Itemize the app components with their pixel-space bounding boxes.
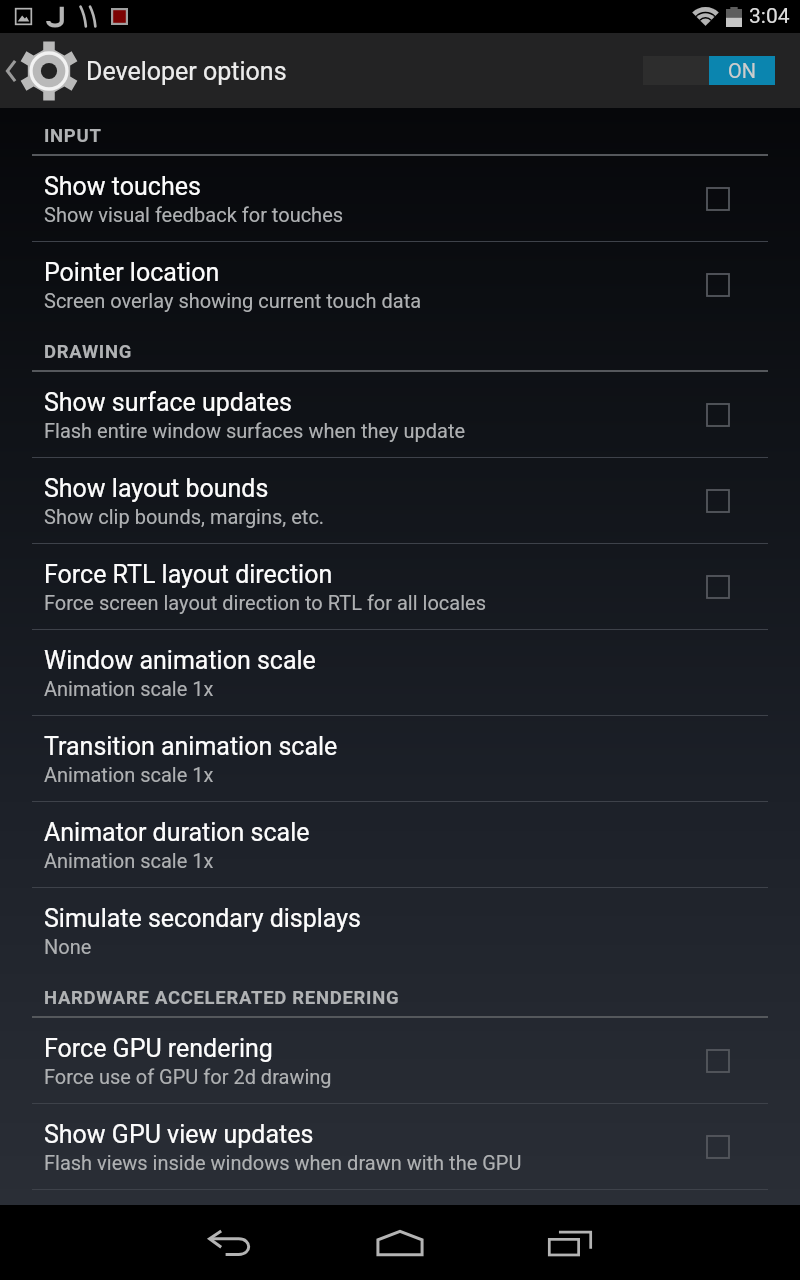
staticText: Screen overlay showing current touch dat…	[44, 289, 422, 312]
staticText: Show surface updates	[44, 388, 292, 417]
button[interactable]: Force RTL layout direction	[0, 544, 800, 630]
staticText: Flash views inside windows when drawn wi…	[44, 1151, 522, 1174]
staticText: Animation scale 1x	[44, 763, 214, 786]
button[interactable]: Transition animation scale	[0, 716, 800, 802]
staticText: Window animation scale	[44, 646, 316, 675]
staticText: Show visual feedback for touches	[44, 203, 344, 226]
staticText: Pointer location	[44, 258, 220, 287]
staticText: INPUT	[44, 125, 102, 147]
button[interactable]: Animator duration scale	[0, 802, 800, 888]
button[interactable]: Developer options on	[643, 56, 775, 85]
button[interactable]: Show GPU view updates	[0, 1104, 800, 1190]
staticText: HARDWARE ACCELERATED RENDERING	[44, 987, 400, 1009]
staticText: 3:04	[749, 4, 790, 29]
button[interactable]: Force GPU rendering	[0, 1018, 800, 1104]
staticText: None	[44, 935, 92, 958]
button[interactable]: Show surface updates	[0, 372, 800, 458]
button[interactable]: Window animation scale	[0, 630, 800, 716]
staticText: Flash entire window surfaces when they u…	[44, 419, 466, 442]
staticText: Simulate secondary displays	[44, 904, 362, 933]
staticText: ON	[728, 59, 757, 82]
button[interactable]: Developer options	[0, 41, 287, 101]
staticText: Animation scale 1x	[44, 677, 214, 700]
button[interactable]: Simulate secondary displays	[0, 888, 800, 974]
staticText: Show layout bounds	[44, 474, 269, 503]
staticText: Show GPU view updates	[44, 1120, 314, 1149]
button[interactable]: Home	[360, 1205, 440, 1280]
staticText: Force GPU rendering	[44, 1034, 273, 1063]
staticText: DRAWING	[44, 341, 133, 363]
staticText: Developer options	[86, 57, 287, 86]
staticText: Force screen layout direction to RTL for…	[44, 591, 486, 614]
staticText: Show touches	[44, 172, 201, 201]
staticText: Force use of GPU for 2d drawing	[44, 1065, 332, 1088]
button[interactable]: Pointer location	[0, 242, 800, 328]
button[interactable]: Back	[190, 1205, 270, 1280]
staticText: Transition animation scale	[44, 732, 338, 761]
button[interactable]: Show touches	[0, 156, 800, 242]
button[interactable]: Recent apps	[530, 1205, 610, 1280]
staticText: Show clip bounds, margins, etc.	[44, 505, 325, 528]
staticText: Animation scale 1x	[44, 849, 214, 872]
button[interactable]: Show layout bounds	[0, 458, 800, 544]
staticText: Force RTL layout direction	[44, 560, 333, 589]
staticText: Animator duration scale	[44, 818, 310, 847]
